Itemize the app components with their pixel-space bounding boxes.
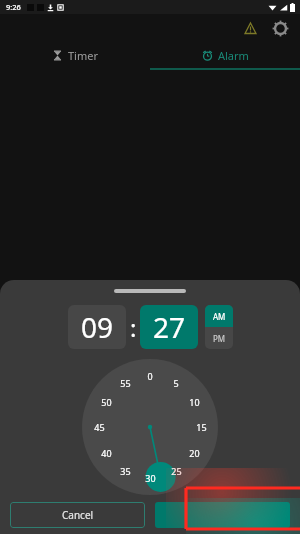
staticText: 20 (189, 447, 200, 459)
staticText: 30 (145, 472, 156, 484)
button[interactable]: OK (155, 502, 290, 528)
staticText: 40 (101, 447, 112, 459)
button[interactable]: Warning (238, 16, 262, 40)
staticText: 5 (173, 377, 179, 389)
staticText: Timer (68, 48, 98, 63)
staticText: 27 (153, 308, 186, 346)
button[interactable]: Alarm (150, 42, 300, 68)
button[interactable]: Timer (0, 42, 150, 68)
staticText: : (130, 311, 137, 344)
staticText: 09 (81, 308, 114, 346)
staticText: 35 (120, 465, 131, 477)
button[interactable]: AM (205, 305, 233, 327)
staticText: 15 (196, 421, 207, 433)
staticText: PM (213, 333, 226, 344)
staticText: Alarm (218, 48, 249, 63)
staticText: 9:26 (6, 2, 21, 12)
staticText: 50 (101, 396, 112, 408)
button[interactable]: 09 (68, 305, 126, 349)
staticText: 10 (189, 396, 200, 408)
staticText: 25 (171, 465, 182, 477)
button[interactable]: PM (205, 327, 233, 349)
button[interactable]: Cancel (10, 502, 145, 528)
staticText: 0 (147, 370, 153, 382)
staticText: Cancel (62, 508, 94, 522)
button[interactable]: 27 (140, 305, 198, 349)
staticText: 55 (120, 377, 131, 389)
staticText: No alarms (123, 283, 177, 298)
staticText: 45 (94, 421, 105, 433)
button[interactable]: Settings (268, 16, 292, 40)
staticText: AM (213, 311, 226, 322)
